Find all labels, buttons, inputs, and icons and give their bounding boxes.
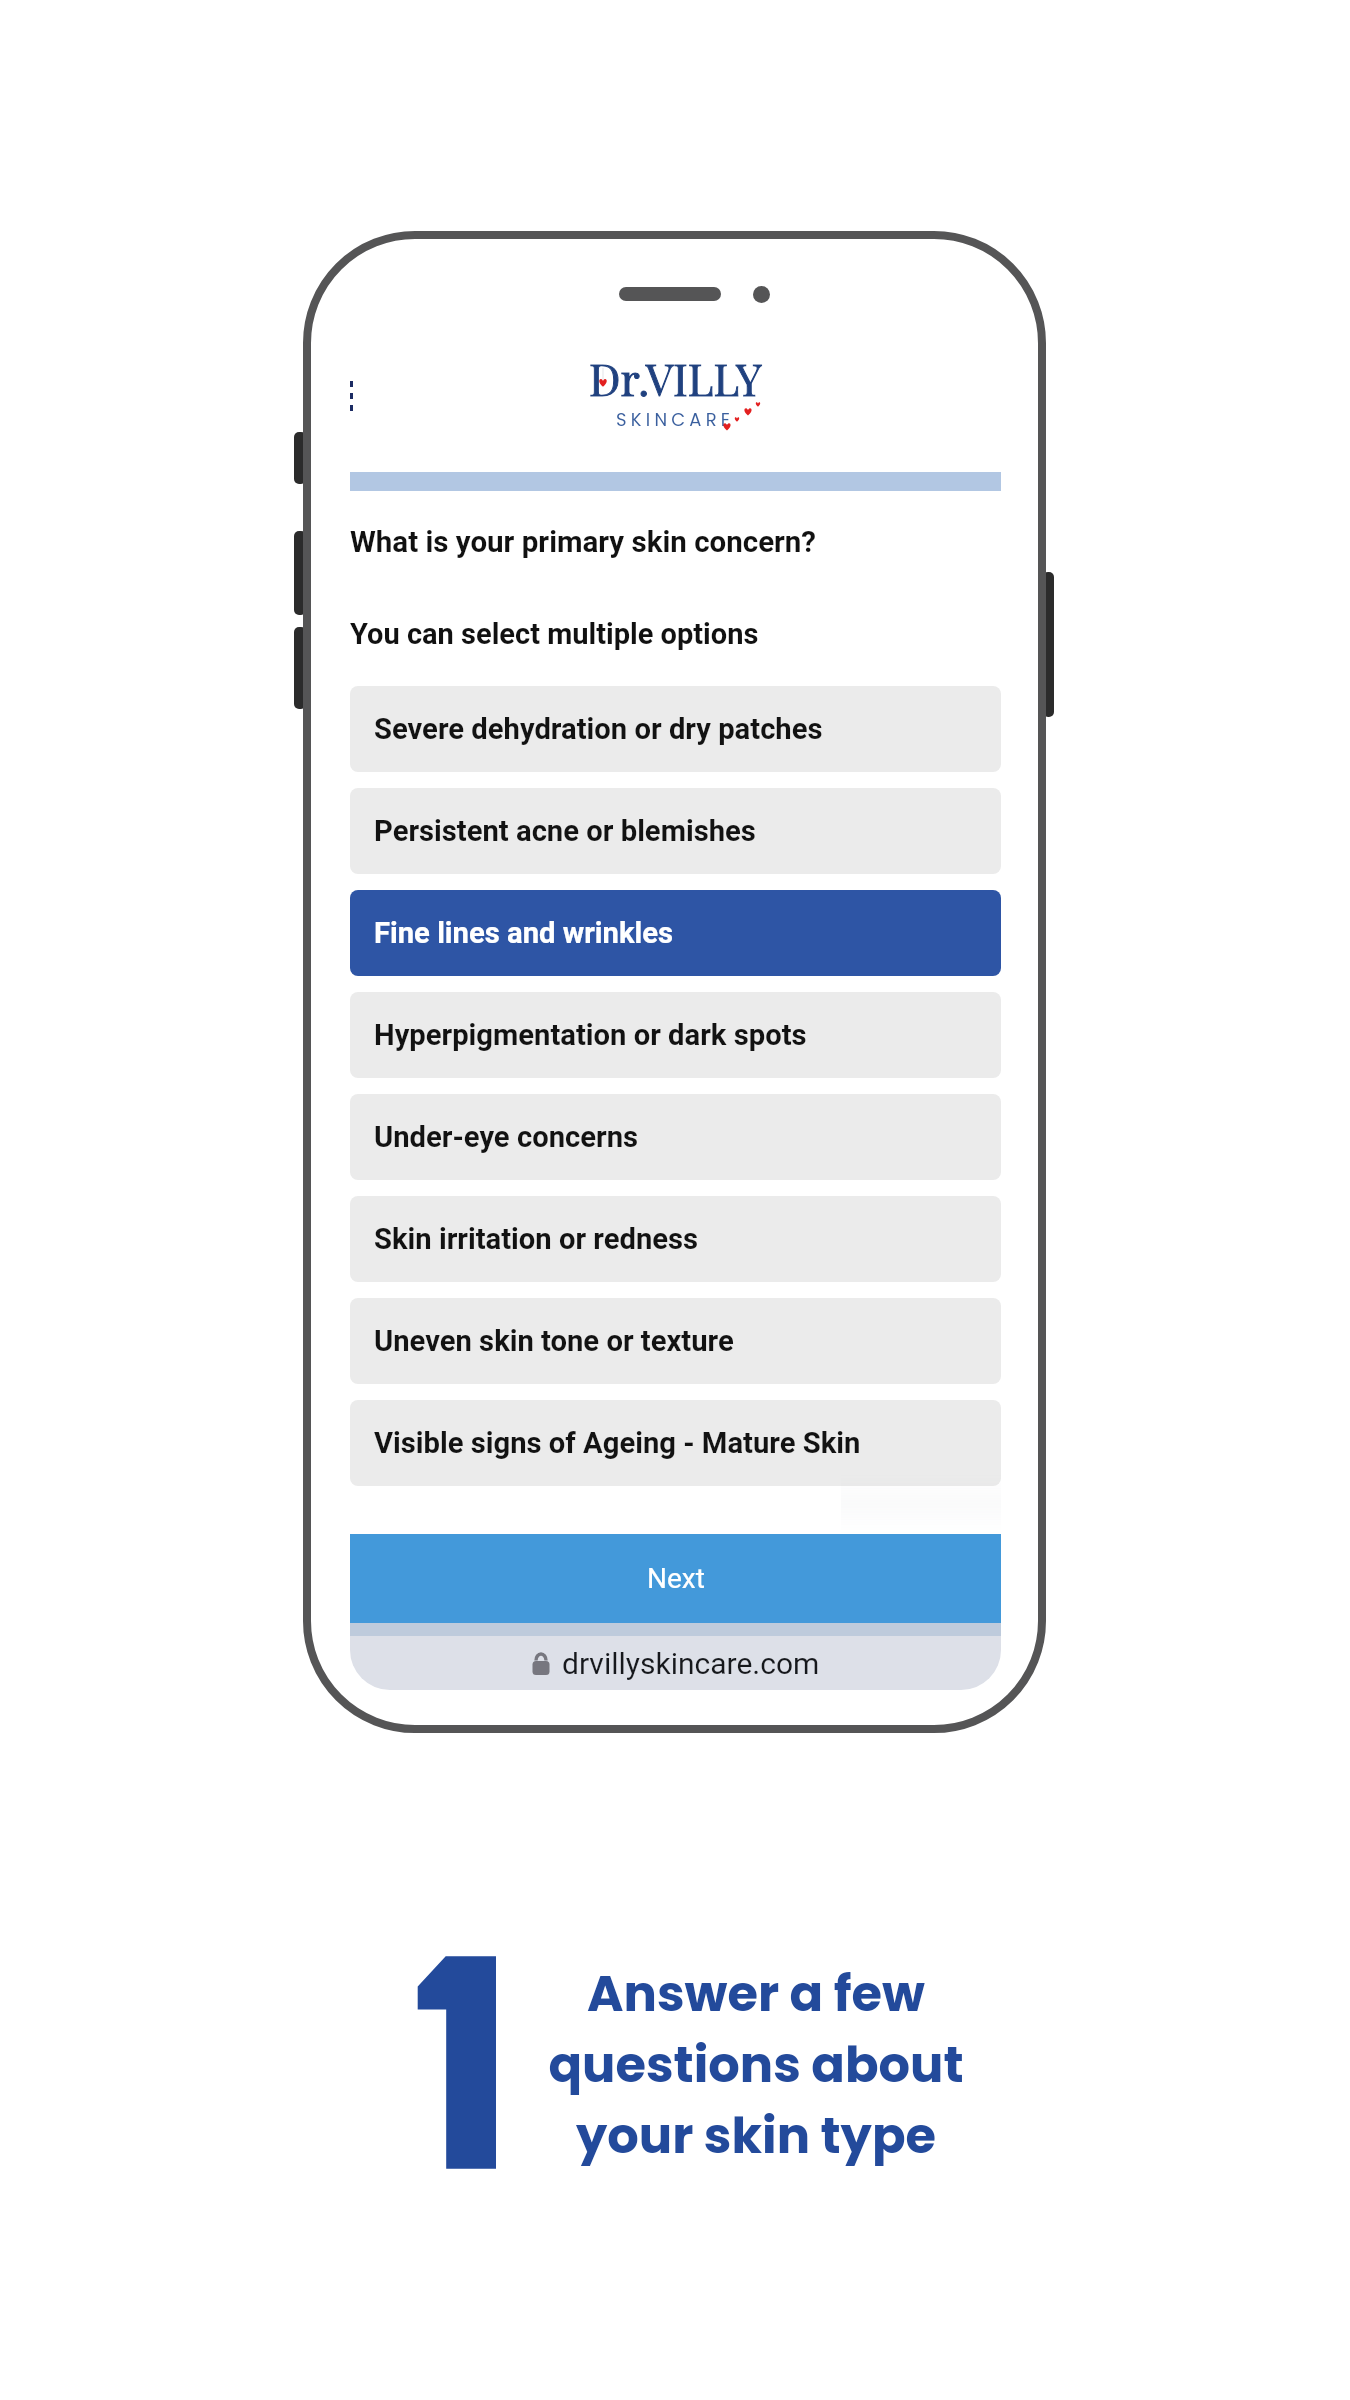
button[interactable]: Under-eye concerns: [350, 1094, 1001, 1180]
button[interactable]: Uneven skin tone or texture: [350, 1298, 1001, 1384]
staticText: Next: [647, 1562, 705, 1595]
staticText: Uneven skin tone or texture: [374, 1324, 734, 1358]
staticText: You can select multiple options: [350, 617, 759, 651]
staticText: Under-eye concerns: [374, 1120, 639, 1154]
staticText: Dr.VILLY: [589, 349, 762, 407]
staticText: Fine lines and wrinkles: [374, 916, 674, 950]
button[interactable]: Skin irritation or redness: [350, 1196, 1001, 1282]
staticText: drvillyskincare.com: [562, 1646, 820, 1681]
button[interactable]: drvillyskincare.com: [350, 1636, 1001, 1690]
button[interactable]: Hyperpigmentation or dark spots: [350, 992, 1001, 1078]
button[interactable]: Next: [350, 1534, 1001, 1623]
button[interactable]: Severe dehydration or dry patches: [350, 686, 1001, 772]
staticText: Persistent acne or blemishes: [374, 814, 756, 848]
staticText: What is your primary skin concern?: [350, 525, 817, 560]
staticText: Severe dehydration or dry patches: [374, 712, 823, 746]
staticText: Answer a few questions about your skin t…: [506, 1959, 1006, 2170]
button[interactable]: Menu: [350, 378, 368, 414]
staticText: Visible signs of Ageing - Mature Skin: [374, 1426, 861, 1460]
button[interactable]: Fine lines and wrinkles: [350, 890, 1001, 976]
staticText: SKINCARE: [616, 407, 735, 432]
staticText: Skin irritation or redness: [374, 1222, 699, 1256]
button[interactable]: Visible signs of Ageing - Mature Skin: [350, 1400, 1001, 1486]
button[interactable]: Persistent acne or blemishes: [350, 788, 1001, 874]
staticText: Dr.VILLY: [589, 349, 762, 407]
staticText: Hyperpigmentation or dark spots: [374, 1018, 807, 1052]
